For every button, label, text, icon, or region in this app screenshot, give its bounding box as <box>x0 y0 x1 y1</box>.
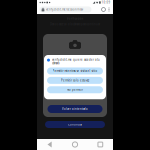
staticText: verify.didit.me quiere acceder a tu cáma… <box>52 58 100 65</box>
button[interactable]: No permitir <box>47 86 103 93</box>
button[interactable]: More options <box>106 5 111 14</box>
staticText: No permitir <box>67 88 83 91</box>
staticText: Volver a intentarlo <box>62 107 88 111</box>
button[interactable]: Reload <box>100 5 106 14</box>
button[interactable]: verify.didit.me/session/new <box>39 6 91 13</box>
button[interactable]: Home <box>62 139 88 150</box>
staticText: Danos acceso a la cámara para continuar <box>50 22 100 26</box>
staticText: Permitir mientras se visita el sitio <box>52 69 97 73</box>
button[interactable]: Back <box>37 139 62 150</box>
staticText: verify.didit.me/session/new <box>46 8 83 11</box>
button[interactable]: Permitir solo esta vez <box>47 77 103 84</box>
button[interactable]: Volver a intentarlo <box>47 105 102 113</box>
staticText: Permitir solo esta vez <box>61 79 89 82</box>
button[interactable]: Continuar <box>45 121 105 128</box>
staticText: 10:09 <box>101 1 110 4</box>
staticText: Continuar <box>68 123 82 126</box>
button[interactable]: Recent apps <box>88 139 113 150</box>
button[interactable]: Permitir mientras se visita el sitio <box>47 67 103 74</box>
staticText: Verificación <box>66 17 83 20</box>
